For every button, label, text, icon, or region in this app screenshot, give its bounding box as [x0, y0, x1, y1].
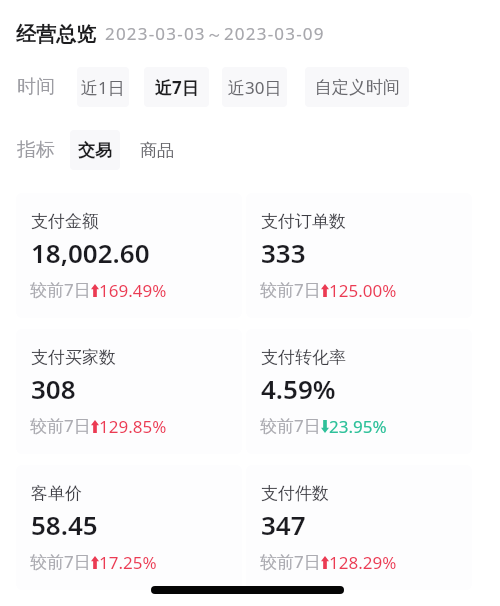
staticText: 交易 [78, 140, 112, 161]
staticText: 客单价 [31, 483, 82, 504]
staticText: 4.59% [261, 371, 336, 406]
staticText: 18,002.60 [31, 235, 150, 270]
staticText: 2023-03-03～2023-03-09 [105, 22, 325, 45]
staticText: 支付件数 [261, 483, 329, 504]
button[interactable]: 近1日 [77, 67, 129, 107]
staticText: 较前7日 [30, 550, 91, 573]
staticText: 近1日 [81, 76, 125, 99]
staticText: 347 [261, 507, 306, 542]
button[interactable]: 支付件数 [246, 465, 472, 590]
staticText: 自定义时间 [315, 77, 400, 98]
button[interactable]: 支付转化率 [246, 329, 472, 454]
staticText: 支付金额 [31, 211, 99, 232]
staticText: 23.95% [329, 415, 387, 438]
staticText: 较前7日 [260, 414, 321, 437]
staticText: 169.49% [99, 279, 167, 302]
staticText: 308 [31, 371, 76, 406]
button[interactable]: 支付买家数 [16, 329, 242, 454]
staticText: 支付转化率 [261, 347, 346, 368]
staticText: 经营总览 [16, 22, 96, 47]
staticText: 较前7日 [30, 414, 91, 437]
button[interactable]: 交易 [70, 130, 120, 170]
staticText: 近30日 [228, 76, 282, 99]
staticText: 较前7日 [260, 550, 321, 573]
staticText: 128.29% [329, 551, 397, 574]
staticText: 58.45 [31, 507, 98, 542]
button[interactable]: 支付订单数 [246, 193, 472, 318]
staticText: 333 [261, 235, 306, 270]
staticText: 17.25% [99, 551, 157, 574]
staticText: 商品 [140, 140, 174, 161]
staticText: 时间 [17, 75, 55, 99]
staticText: 较前7日 [30, 278, 91, 301]
button[interactable]: 近7日 [144, 67, 209, 107]
staticText: 125.00% [329, 279, 397, 302]
staticText: 支付订单数 [261, 211, 346, 232]
button[interactable]: 商品 [132, 130, 182, 170]
button[interactable]: 自定义时间 [305, 67, 409, 107]
staticText: 129.85% [99, 415, 167, 438]
staticText: 指标 [17, 138, 55, 162]
button[interactable]: 支付金额 [16, 193, 242, 318]
staticText: 较前7日 [260, 278, 321, 301]
button[interactable]: 客单价 [16, 465, 242, 590]
button[interactable]: 近30日 [222, 67, 287, 107]
staticText: 近7日 [155, 76, 199, 99]
staticText: 支付买家数 [31, 347, 116, 368]
